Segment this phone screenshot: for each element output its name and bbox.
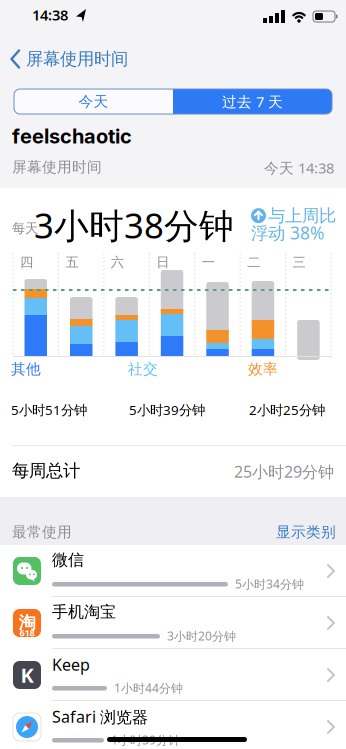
staticText: 1小时39分钟 xyxy=(111,732,180,748)
staticText: 1小时44分钟 xyxy=(114,680,183,696)
button[interactable]: 显示类别 xyxy=(276,523,336,541)
staticText: K xyxy=(20,662,33,688)
staticText: 屏幕使用时间 xyxy=(26,48,128,70)
button[interactable]: K xyxy=(0,649,346,701)
staticText: 二 xyxy=(247,254,260,270)
staticText: 其他 xyxy=(11,360,41,378)
button[interactable]: 今天 xyxy=(14,89,173,114)
staticText: 5小时39分钟 xyxy=(129,401,205,419)
staticText: 5小时51分钟 xyxy=(11,401,87,419)
button[interactable]: 过去 7 天 xyxy=(173,89,332,114)
staticText: 五 xyxy=(65,254,78,270)
staticText: 社交 xyxy=(128,360,158,378)
button[interactable]: 返回 屏幕使用时间 xyxy=(10,48,128,70)
staticText: 手机淘宝 xyxy=(52,602,116,622)
staticText: 每天 xyxy=(12,220,38,236)
staticText: 微信 xyxy=(52,550,84,570)
staticText: Safari 浏览器 xyxy=(52,706,148,727)
staticText: 日 xyxy=(156,254,169,270)
staticText: 2小时25分钟 xyxy=(249,401,325,419)
staticText: 效率 xyxy=(248,360,278,378)
button[interactable]: 微信 xyxy=(0,545,346,597)
staticText: 25小时29分钟 xyxy=(234,461,334,482)
staticText: 今天 xyxy=(78,92,108,110)
staticText: Keep xyxy=(52,654,90,675)
staticText: 浮动 38% xyxy=(251,221,324,244)
staticText: 过去 7 天 xyxy=(222,92,283,111)
staticText: 四 xyxy=(20,254,33,270)
staticText: feelschaotic xyxy=(12,124,132,148)
staticText: 5小时34分钟 xyxy=(235,576,304,592)
staticText: 淘 xyxy=(18,612,35,633)
staticText: 14:38 xyxy=(32,5,68,24)
staticText: 显示类别 xyxy=(276,523,336,541)
button[interactable]: 淘 xyxy=(0,597,346,649)
staticText: 屏幕使用时间 xyxy=(12,158,102,176)
staticText: 今天 14:38 xyxy=(264,158,334,177)
staticText: 与上周比 xyxy=(268,205,336,226)
staticText: 3小时20分钟 xyxy=(167,628,236,644)
button[interactable]: Safari 浏览器 xyxy=(0,701,346,749)
staticText: 三 xyxy=(293,254,306,270)
staticText: 每周总计 xyxy=(12,460,80,481)
staticText: 一 xyxy=(202,254,215,270)
staticText: 3小时38分钟 xyxy=(34,202,234,248)
staticText: 六 xyxy=(111,254,124,270)
staticText: 618 xyxy=(19,626,34,639)
staticText: 最常使用 xyxy=(12,523,72,541)
